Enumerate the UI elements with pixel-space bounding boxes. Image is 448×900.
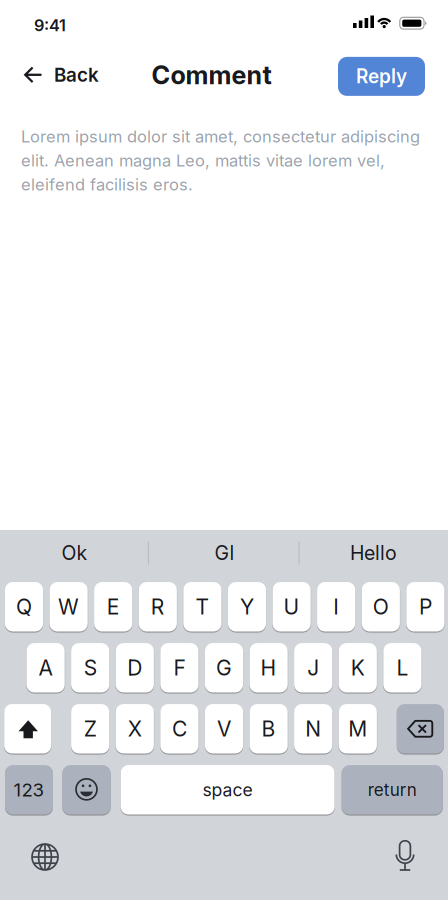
button[interactable]: Q — [5, 582, 43, 631]
button[interactable]: G — [205, 643, 243, 692]
button[interactable]: D — [116, 643, 154, 692]
staticText: I — [333, 594, 339, 620]
button[interactable]: Z — [71, 704, 109, 753]
staticText: 123 — [13, 778, 44, 801]
staticText: L — [396, 655, 408, 681]
button[interactable]: return — [342, 765, 443, 814]
button[interactable]: C — [160, 704, 198, 753]
button[interactable]: space — [121, 765, 335, 814]
button[interactable]: V — [205, 704, 243, 753]
staticText: K — [351, 655, 365, 681]
staticText: O — [373, 594, 389, 620]
button[interactable]: B — [249, 704, 288, 753]
staticText: Back — [54, 63, 99, 86]
staticText: D — [127, 655, 142, 681]
staticText: G — [216, 655, 232, 681]
button[interactable]: O — [362, 582, 400, 631]
button[interactable]: Next keyboard — [31, 843, 59, 871]
button[interactable]: Delete — [397, 704, 444, 753]
button[interactable]: L — [383, 643, 421, 692]
staticText: elit. Aenean magna Leo, mattis vitae lor… — [21, 151, 385, 170]
button[interactable]: I — [317, 582, 355, 631]
button[interactable]: K — [339, 643, 377, 692]
button[interactable]: Back — [24, 63, 99, 86]
staticText: Gl — [214, 541, 234, 565]
button[interactable]: A — [26, 643, 65, 692]
button[interactable]: M — [339, 704, 377, 753]
staticText: Reply — [356, 65, 407, 88]
staticText: return — [368, 779, 417, 800]
staticText: Ok — [61, 541, 87, 565]
staticText: W — [58, 594, 79, 620]
button[interactable]: H — [249, 643, 288, 692]
button[interactable]: Emoji — [62, 765, 110, 814]
button[interactable]: 123 — [5, 765, 53, 814]
staticText: eleifend facilisis eros. — [21, 175, 193, 194]
button[interactable]: T — [183, 582, 221, 631]
staticText: N — [305, 716, 321, 742]
staticText: M — [348, 716, 367, 742]
button[interactable]: Dictation — [395, 840, 415, 871]
staticText: 9:41 — [34, 15, 66, 35]
staticText: A — [39, 655, 53, 681]
staticText: Q — [16, 594, 32, 620]
button[interactable]: Hello — [300, 531, 446, 575]
staticText: F — [173, 655, 185, 681]
staticText: Lorem ipsum dolor sit amet, consectetur … — [21, 127, 420, 146]
button[interactable]: J — [294, 643, 332, 692]
staticText: P — [419, 594, 432, 620]
staticText: Comment — [152, 60, 272, 90]
button[interactable]: W — [49, 582, 88, 631]
staticText: R — [151, 594, 165, 620]
button[interactable]: Y — [228, 582, 266, 631]
staticText: Z — [84, 716, 97, 742]
button[interactable]: X — [116, 704, 154, 753]
button[interactable]: Ok — [1, 531, 147, 575]
staticText: Y — [240, 594, 254, 620]
staticText: X — [128, 716, 142, 742]
staticText: E — [107, 594, 120, 620]
staticText: J — [307, 655, 319, 681]
button[interactable]: N — [294, 704, 332, 753]
button[interactable]: U — [272, 582, 311, 631]
staticText: U — [284, 594, 300, 620]
staticText: V — [217, 716, 231, 742]
staticText: T — [195, 594, 209, 620]
button[interactable]: E — [94, 582, 132, 631]
staticText: S — [84, 655, 97, 681]
button[interactable]: F — [160, 643, 198, 692]
button[interactable]: Reply — [338, 57, 425, 96]
button[interactable]: R — [139, 582, 177, 631]
button[interactable]: Shift — [4, 704, 51, 753]
button[interactable]: P — [406, 582, 444, 631]
staticText: H — [261, 655, 277, 681]
staticText: space — [203, 779, 253, 800]
staticText: C — [172, 716, 187, 742]
button[interactable]: Gl — [151, 531, 297, 575]
staticText: Hello — [350, 541, 397, 565]
button[interactable]: S — [71, 643, 109, 692]
staticText: B — [262, 716, 276, 742]
